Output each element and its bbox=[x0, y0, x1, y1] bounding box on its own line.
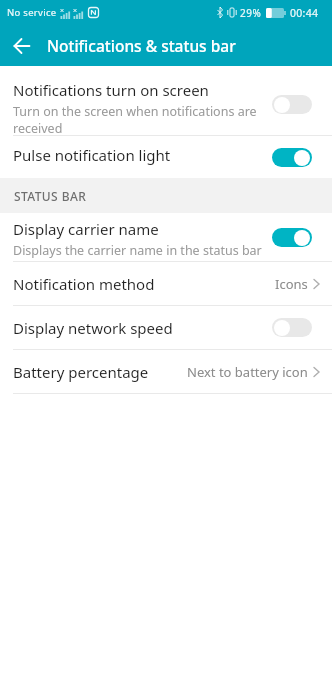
button[interactable] bbox=[272, 228, 312, 247]
button[interactable] bbox=[272, 318, 312, 337]
staticText: Display carrier name bbox=[13, 219, 159, 239]
button[interactable] bbox=[272, 95, 312, 114]
staticText: 29% bbox=[240, 6, 262, 20]
button[interactable]: Display network speed bbox=[0, 306, 332, 349]
button[interactable]: Notification method bbox=[0, 262, 332, 305]
staticText: Turn on the screen when notifications ar… bbox=[13, 103, 257, 136]
staticText: Displays the carrier name in the status … bbox=[13, 242, 262, 259]
staticText: STATUS BAR bbox=[14, 188, 87, 204]
staticText: No service bbox=[7, 6, 57, 19]
staticText: Pulse notification light bbox=[13, 145, 171, 165]
staticText: Battery percentage bbox=[13, 362, 149, 382]
staticText: Notifications & status bar bbox=[47, 35, 236, 56]
staticText: Notifications turn on screen bbox=[13, 80, 209, 100]
staticText: Next to battery icon bbox=[187, 363, 308, 381]
button[interactable]: Notifications turn on screen bbox=[0, 66, 332, 135]
button[interactable] bbox=[14, 38, 30, 54]
button[interactable]: Display carrier name bbox=[0, 213, 332, 261]
staticText: Notification method bbox=[13, 274, 155, 294]
staticText: Display network speed bbox=[13, 318, 173, 338]
staticText: 00:44 bbox=[290, 6, 319, 20]
button[interactable]: Battery percentage bbox=[0, 350, 332, 393]
button[interactable]: Pulse notification light bbox=[0, 136, 332, 178]
staticText: Icons bbox=[275, 275, 308, 293]
button[interactable] bbox=[272, 148, 312, 167]
